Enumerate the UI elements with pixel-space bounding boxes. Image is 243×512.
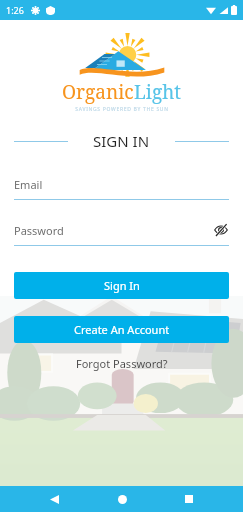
button[interactable]: Forgot Password? (0, 353, 243, 374)
button[interactable]: Email (14, 177, 229, 200)
staticText: SAVINGS POWERED BY THE SUN (75, 106, 169, 113)
staticText: Organic (62, 79, 134, 105)
button[interactable]: Home (108, 486, 136, 512)
button[interactable]: Recents (175, 486, 203, 512)
staticText: Forgot Password? (76, 356, 168, 371)
staticText: Light (134, 79, 181, 105)
button[interactable]: Back (40, 486, 68, 512)
staticText: Create An Account (74, 322, 170, 337)
button[interactable]: Toggle password visibility (213, 222, 229, 238)
button[interactable]: Sign In (14, 272, 229, 299)
staticText: Email (14, 177, 43, 192)
button[interactable]: Create An Account (14, 316, 229, 343)
staticText: SIGN IN (93, 131, 150, 151)
staticText: 1:26 (6, 4, 24, 16)
button[interactable]: Password (14, 222, 229, 246)
staticText: Password (14, 223, 64, 238)
staticText: Sign In (104, 278, 140, 293)
